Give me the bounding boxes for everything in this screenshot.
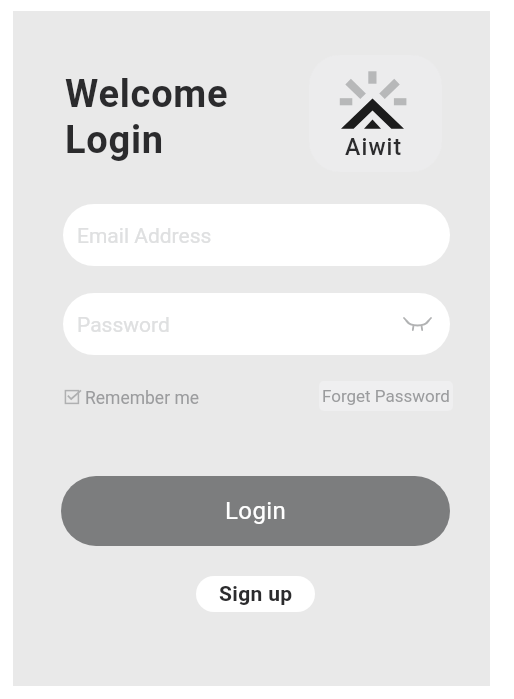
- button[interactable]: Aiwit logo: [309, 55, 442, 172]
- staticText: Remember me: [85, 388, 200, 409]
- staticText: Email Address: [77, 224, 212, 249]
- staticText: Password: [77, 313, 170, 338]
- button[interactable]: Forget Password: [319, 381, 453, 411]
- button[interactable]: Show password: [392, 306, 444, 342]
- button[interactable]: Remember me: [62, 383, 200, 413]
- staticText: Welcome Login: [65, 72, 229, 162]
- button[interactable]: Login: [61, 476, 450, 546]
- button[interactable]: Email Address: [63, 204, 450, 266]
- button[interactable]: Password: [63, 293, 450, 355]
- staticText: Login: [225, 497, 287, 525]
- button[interactable]: Sign up: [196, 576, 315, 612]
- staticText: Aiwit: [345, 134, 403, 161]
- staticText: Sign up: [219, 582, 293, 607]
- staticText: Forget Password: [322, 386, 450, 406]
